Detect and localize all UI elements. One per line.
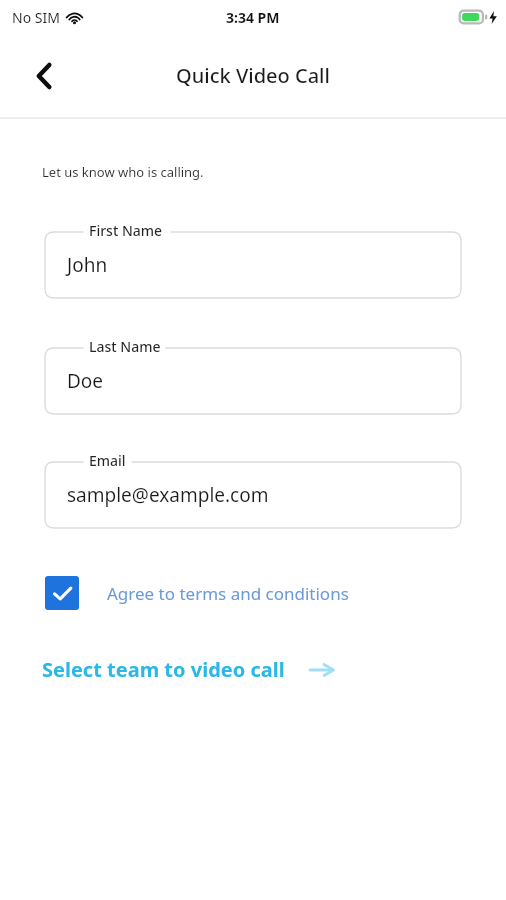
staticText: 3:34 PM: [226, 8, 280, 27]
button[interactable]: Agree to terms and conditions: [45, 576, 461, 610]
button[interactable]: Back: [20, 52, 68, 100]
staticText: sample@example.com: [67, 482, 269, 508]
button[interactable]: John: [45, 221, 461, 299]
staticText: Select team to video call: [42, 656, 285, 683]
staticText: Last Name: [89, 337, 161, 356]
staticText: John: [67, 252, 108, 278]
button[interactable]: sample@example.com: [45, 451, 461, 529]
staticText: Agree to terms and conditions: [107, 582, 349, 605]
button[interactable]: Doe: [45, 337, 461, 415]
staticText: First Name: [89, 221, 163, 240]
button[interactable]: Select team to video call: [42, 656, 335, 683]
staticText: Doe: [67, 368, 104, 394]
staticText: No SIM: [12, 8, 60, 27]
staticText: Quick Video Call: [176, 62, 330, 89]
staticText: Let us know who is calling.: [42, 163, 204, 181]
staticText: Email: [89, 451, 126, 470]
